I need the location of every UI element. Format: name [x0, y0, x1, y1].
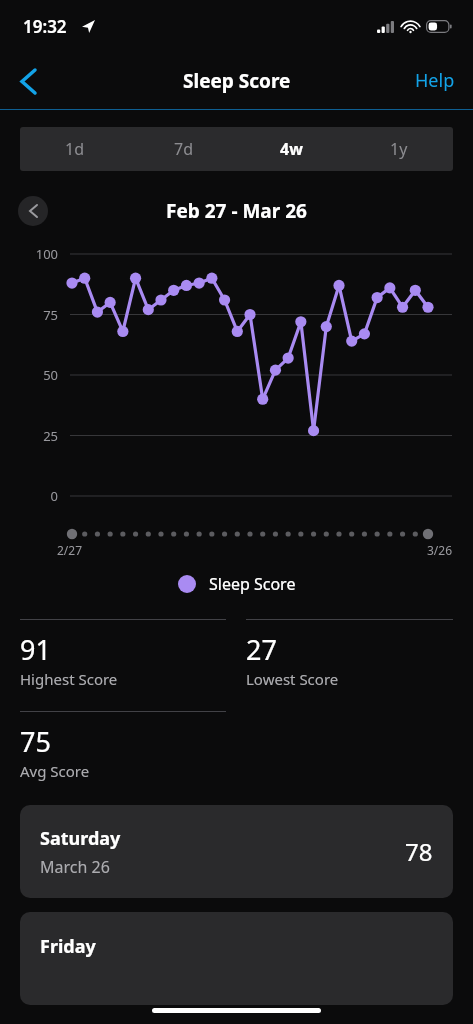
button[interactable]: 1y — [345, 127, 453, 171]
staticText: 0 — [18, 487, 58, 505]
staticText: 50 — [18, 366, 58, 384]
staticText: Feb 27 - Mar 26 — [166, 198, 307, 224]
button[interactable]: Friday — [20, 912, 453, 1005]
button[interactable]: 1d — [20, 127, 129, 171]
staticText: 2/27 — [57, 542, 83, 558]
staticText: 3/26 — [427, 542, 453, 558]
staticText: 1d — [65, 138, 84, 160]
button[interactable]: Back — [0, 53, 56, 109]
staticText: Avg Score — [20, 761, 90, 781]
button[interactable]: 75 — [20, 711, 226, 781]
staticText: Sleep Score — [209, 573, 296, 595]
staticText: 75 — [18, 306, 58, 324]
staticText: 78 — [405, 835, 433, 868]
staticText: March 26 — [40, 856, 110, 878]
staticText: 75 — [20, 723, 51, 760]
button[interactable]: Saturday — [20, 805, 453, 898]
button[interactable]: 27 — [246, 619, 453, 689]
staticText: 1y — [390, 138, 408, 160]
staticText: 27 — [246, 631, 277, 668]
staticText: Saturday — [40, 826, 121, 851]
staticText: Highest Score — [20, 669, 118, 689]
staticText: 100 — [18, 245, 58, 263]
button[interactable]: 4w — [237, 127, 345, 171]
staticText: Lowest Score — [246, 669, 339, 689]
staticText: Friday — [40, 934, 96, 959]
staticText: Sleep Score — [183, 68, 291, 94]
button[interactable]: 91 — [20, 619, 226, 689]
staticText: 4w — [280, 138, 303, 160]
button[interactable]: Previous period — [18, 196, 48, 226]
staticText: 91 — [20, 631, 51, 668]
button[interactable]: 7d — [129, 127, 237, 171]
staticText: 19:32 — [23, 15, 67, 38]
staticText: 25 — [18, 427, 58, 445]
button[interactable]: Help — [397, 54, 473, 107]
staticText: 7d — [174, 138, 193, 160]
